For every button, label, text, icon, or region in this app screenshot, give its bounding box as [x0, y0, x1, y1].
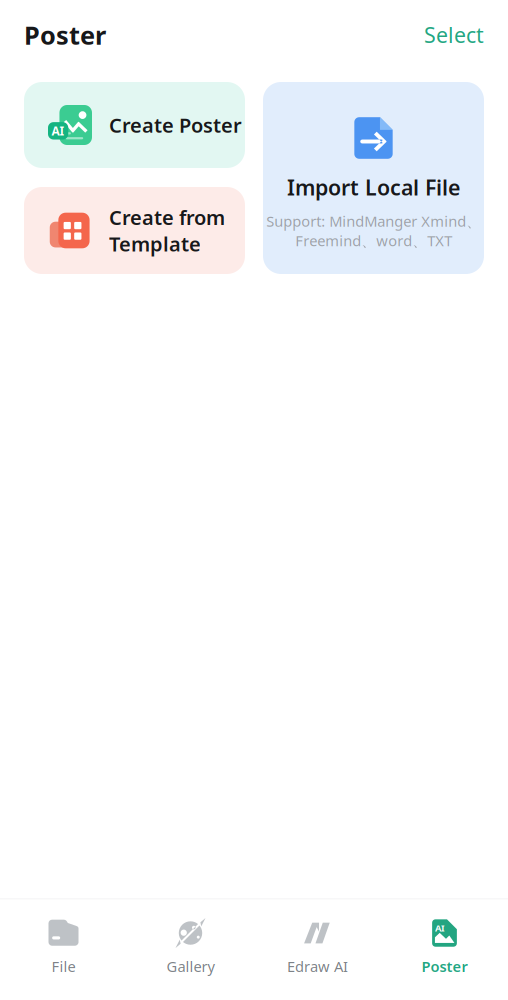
- staticText: AI: [435, 922, 445, 934]
- staticText: Poster: [24, 18, 106, 52]
- button[interactable]: Create from Template: [24, 187, 245, 274]
- staticText: Edraw AI: [287, 956, 348, 976]
- button[interactable]: AI: [381, 899, 508, 1000]
- staticText: Gallery: [166, 956, 214, 976]
- button[interactable]: Gallery: [127, 899, 254, 1000]
- staticText: Select: [424, 21, 484, 49]
- button[interactable]: AI: [24, 82, 245, 168]
- staticText: File: [51, 956, 75, 976]
- button[interactable]: File: [0, 899, 127, 1000]
- staticText: Create Poster: [109, 112, 242, 138]
- staticText: AI: [52, 123, 65, 139]
- staticText: Import Local File: [287, 173, 460, 201]
- staticText: Create from Template: [109, 204, 225, 257]
- button[interactable]: Edraw AI: [254, 899, 381, 1000]
- staticText: Poster: [421, 956, 467, 976]
- staticText: Support: MindManger Xmind、 Freemind、word…: [266, 211, 481, 250]
- button[interactable]: Import Local File: [263, 82, 484, 274]
- button[interactable]: Select: [424, 21, 484, 49]
